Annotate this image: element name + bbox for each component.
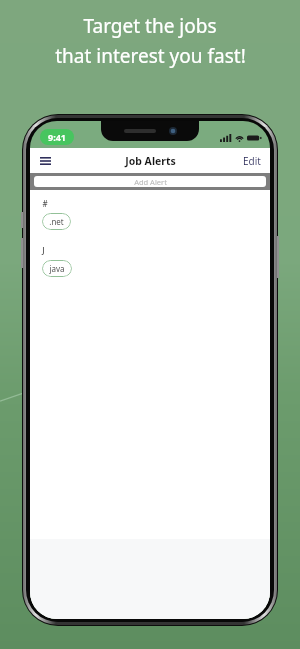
staticText: Job Alerts [125, 154, 176, 168]
staticText: # [42, 198, 48, 209]
staticText: java [49, 263, 65, 274]
staticText: 9:41 [48, 131, 66, 143]
button[interactable]: Menu [30, 151, 61, 171]
button[interactable]: .net [42, 213, 71, 230]
staticText: Target the jobs [83, 13, 217, 39]
button[interactable]: java [42, 260, 72, 277]
staticText: Edit [243, 154, 261, 168]
staticText: Add Alert [134, 177, 167, 187]
button[interactable]: Edit [234, 150, 270, 172]
button[interactable]: Add Alert [34, 176, 266, 187]
staticText: J [42, 245, 45, 256]
staticText: .net [49, 216, 64, 227]
staticText: that interest you fast! [55, 43, 246, 69]
